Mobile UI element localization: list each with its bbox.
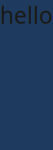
staticText: hello — [0, 0, 53, 30]
